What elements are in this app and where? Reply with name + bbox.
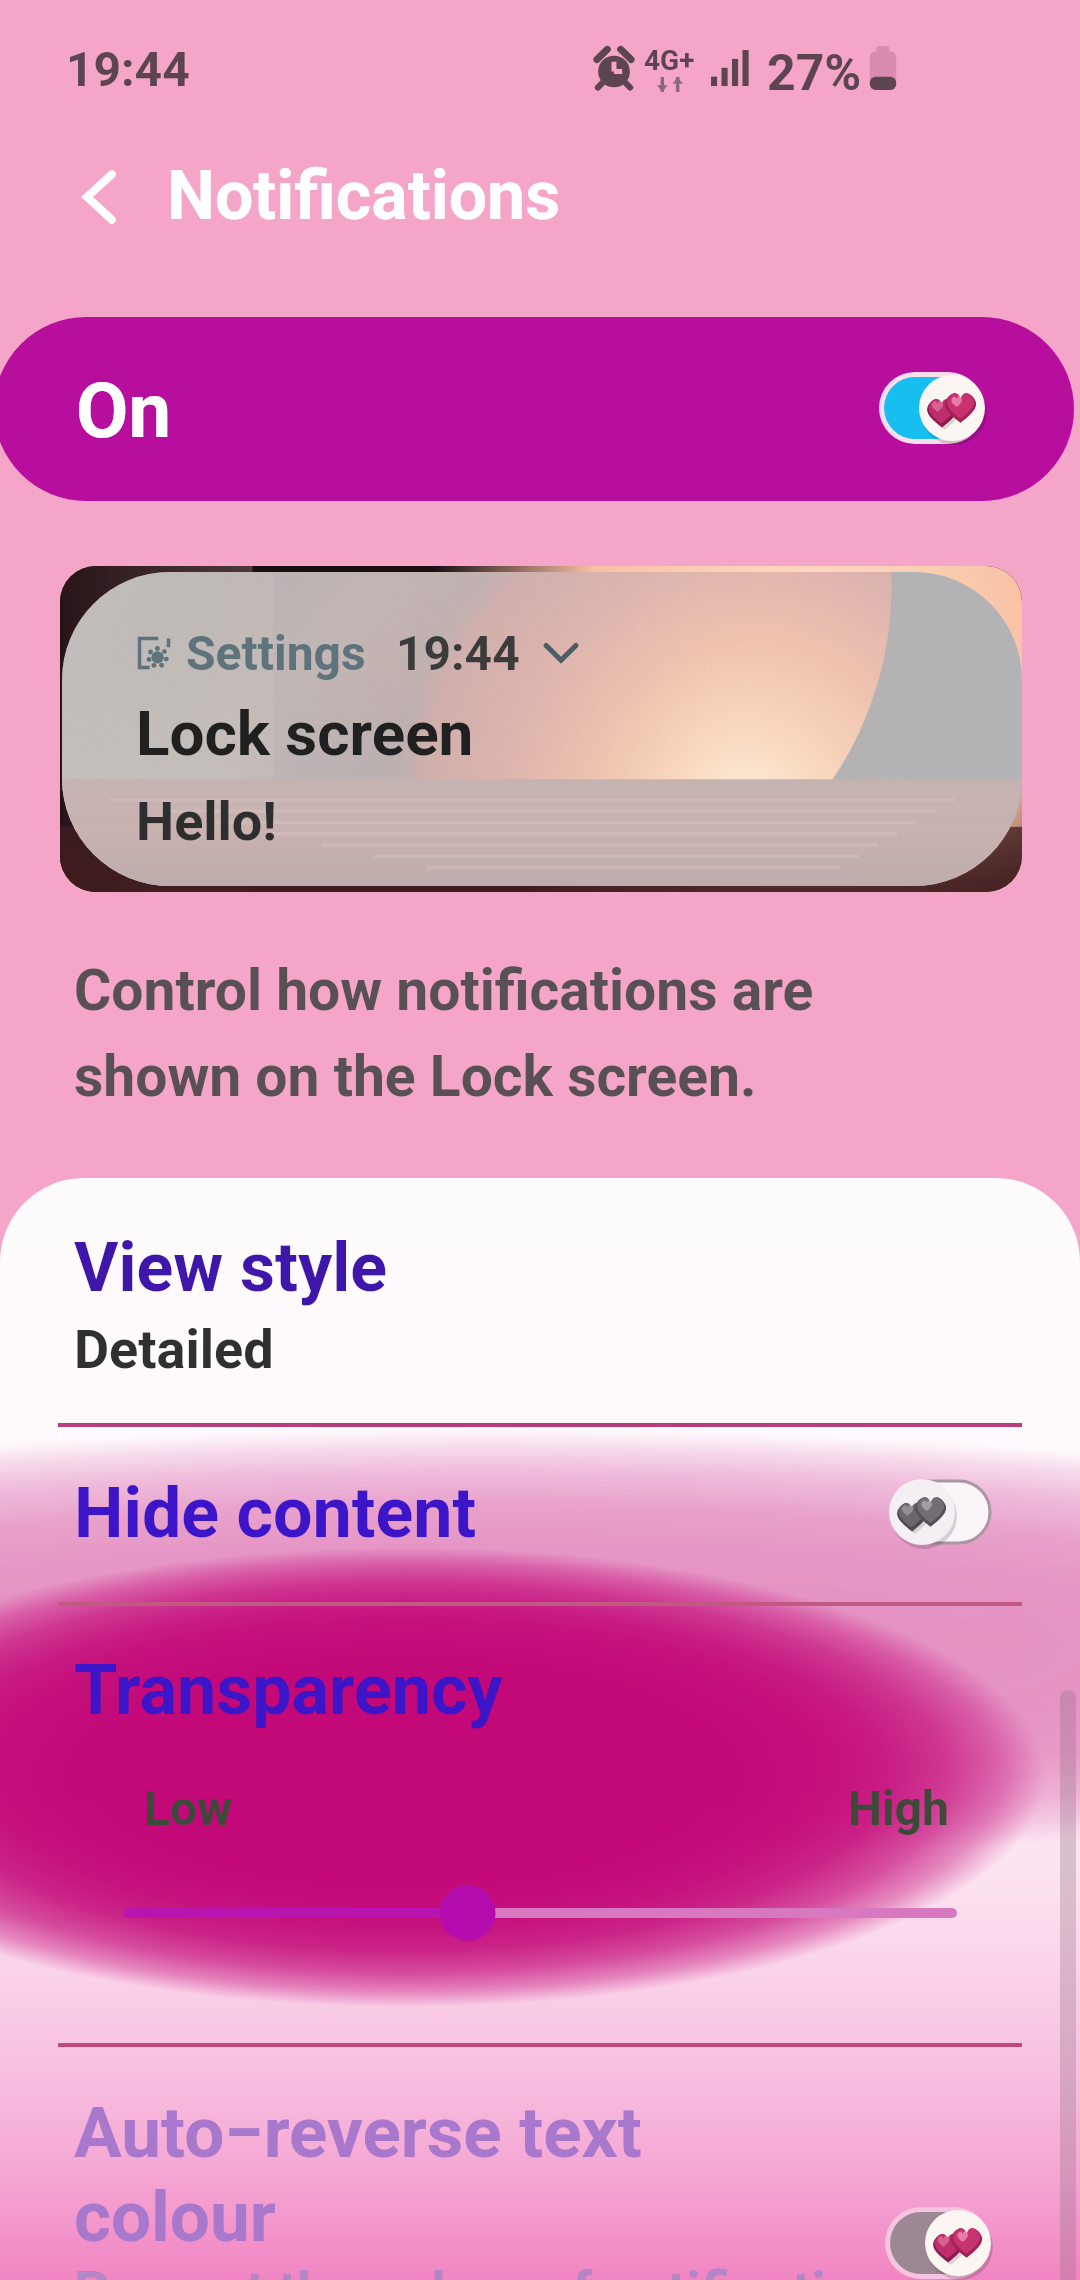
staticText: Settings (186, 625, 366, 681)
staticText: Notifications (167, 156, 561, 236)
button[interactable]: Turn on (886, 1477, 990, 1547)
staticText: Detailed (74, 1318, 274, 1381)
staticText: High (848, 1780, 949, 1836)
staticText: 19:44 (66, 41, 190, 97)
button[interactable]: Turn off (884, 373, 988, 443)
button[interactable]: Hide content (0, 1423, 1080, 1602)
button[interactable]: Auto-reverse text colour toggle (890, 2208, 994, 2278)
staticText: Auto−reverse text colour (74, 2091, 642, 2258)
staticText: 19:44 (396, 625, 520, 681)
staticText: Lock screen (136, 697, 474, 770)
staticText: Prevent the colour of notifications (74, 2260, 916, 2280)
staticText: Hide content (74, 1472, 477, 1554)
staticText: On (76, 366, 171, 455)
button[interactable]: Settings (60, 566, 1022, 892)
staticText: Low (144, 1780, 233, 1836)
staticText: 4G+ (644, 44, 695, 77)
button[interactable]: On (0, 317, 1074, 501)
staticText: Transparency (74, 1649, 503, 1731)
button[interactable]: Auto−reverse text colour (0, 2043, 1080, 2280)
button[interactable]: Back (56, 155, 144, 239)
staticText: View style (74, 1228, 387, 1308)
staticText: Control how notifications are shown on t… (74, 957, 814, 1110)
staticText: 27% (767, 44, 862, 92)
staticText: Hello! (136, 790, 277, 853)
button[interactable]: View style (0, 1178, 1080, 1423)
